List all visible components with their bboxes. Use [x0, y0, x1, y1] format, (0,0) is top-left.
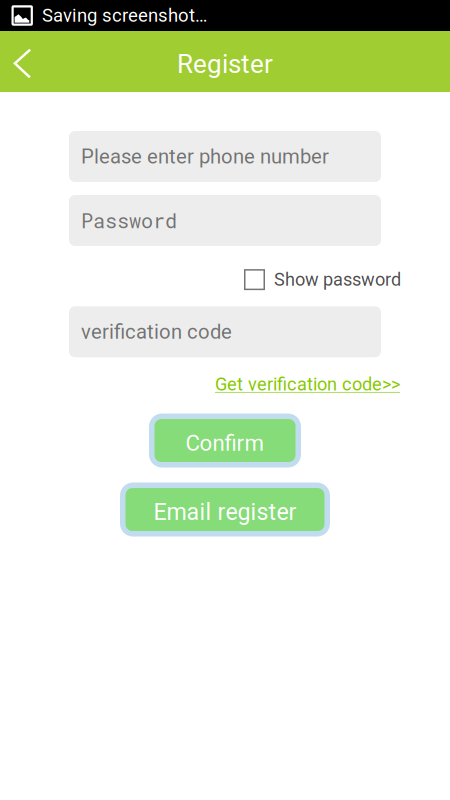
button[interactable]: Please enter phone number: [69, 131, 381, 182]
staticText: Email register: [153, 498, 296, 526]
button[interactable]: verification code: [69, 306, 381, 357]
button[interactable]: Confirm: [149, 413, 301, 467]
staticText: Password: [81, 207, 177, 234]
staticText: Get verification code>>: [215, 374, 400, 395]
button[interactable]: Get verification code>>: [215, 374, 400, 395]
staticText: Confirm: [185, 430, 264, 456]
staticText: Register: [177, 49, 273, 79]
staticText: verification code: [81, 320, 232, 344]
button[interactable]: Show password: [244, 269, 401, 290]
staticText: Show password: [274, 269, 401, 290]
button[interactable]: Password: [69, 195, 381, 246]
button[interactable]: Back: [0, 31, 47, 92]
staticText: Please enter phone number: [81, 145, 329, 168]
button[interactable]: Email register: [120, 482, 330, 536]
staticText: Saving screenshot…: [42, 5, 207, 26]
